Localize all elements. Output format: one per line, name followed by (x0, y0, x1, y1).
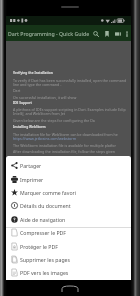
staticText: line and type the command - (13, 82, 62, 87)
button[interactable]: Imprimer (6, 173, 131, 186)
staticText: https://www.jetbrains.com/webstorm (13, 136, 77, 141)
staticText: A plethora of IDEs support scripting in … (13, 107, 126, 112)
staticText: Marquer comme favori (20, 189, 77, 196)
staticText: Supprimer les pages (20, 256, 70, 263)
staticText: Détails du document (20, 202, 71, 209)
button[interactable]: Presentation mode (112, 28, 123, 39)
staticText: Protéger le PDF (20, 243, 58, 250)
button[interactable]: Protéger le PDF (6, 240, 131, 253)
button[interactable]: More options (123, 28, 130, 39)
button[interactable]: Détails du document (6, 199, 131, 212)
staticText: On successful installation, it will show (13, 95, 77, 100)
button[interactable]: PDF vers les images (6, 266, 131, 279)
button[interactable]: Supprimer les pages (6, 253, 131, 266)
staticText: Dart Programming - Quick Guide (8, 30, 90, 37)
staticText: Dart (13, 88, 21, 93)
button[interactable]: Search (90, 28, 101, 39)
staticText: IDE Support (13, 101, 32, 105)
staticText: Given below are the steps for configurin… (13, 118, 95, 123)
staticText: Aide de navigation (20, 216, 66, 223)
staticText: Partager (20, 162, 42, 169)
staticText: The installation file for WebStorm can b… (13, 132, 118, 137)
button[interactable]: Aide de navigation (6, 213, 131, 226)
staticText: Install the Dart SDK. Refer to the steps… (21, 155, 101, 160)
button[interactable]: Compresser le PDF (6, 226, 131, 239)
staticText: IntelliJ, and WebStorm from Jet (13, 111, 65, 116)
staticText: After downloading the installation file,… (13, 149, 116, 154)
button[interactable]: Marquer comme favori (6, 186, 131, 199)
staticText: Verifying the Installation (13, 71, 53, 75)
button[interactable]: Bookmark (101, 28, 112, 39)
staticText: To verify if Dart has been successfully … (13, 78, 127, 83)
button[interactable]: Partager (6, 159, 131, 172)
staticText: Installing WebStorm (13, 125, 46, 129)
staticText: Compresser le PDF (20, 229, 67, 236)
staticText: The WebStorm installation file is availa… (13, 143, 116, 148)
staticText: Imprimer (20, 176, 44, 183)
staticText: PDF vers les images (20, 269, 69, 276)
